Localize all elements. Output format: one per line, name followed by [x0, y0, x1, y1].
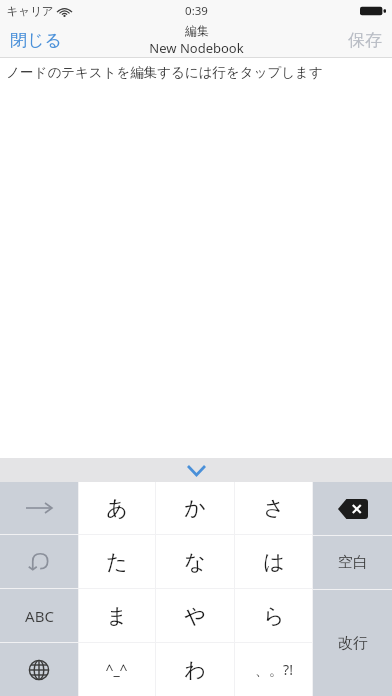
- staticText: 0:39: [185, 3, 208, 19]
- staticText: ABC: [25, 606, 54, 626]
- button[interactable]: ま: [78, 589, 155, 642]
- button[interactable]: や: [156, 589, 234, 642]
- staticText: 、。?!: [255, 660, 293, 679]
- staticText: わ: [184, 657, 206, 683]
- button[interactable]: Delete: [313, 482, 392, 535]
- button[interactable]: ら: [235, 589, 313, 642]
- button[interactable]: 空白: [313, 536, 392, 589]
- staticText: キャリア: [6, 4, 54, 18]
- button[interactable]: 、。?!: [235, 643, 313, 696]
- staticText: 閉じる: [10, 30, 62, 51]
- staticText: New Nodebook: [149, 39, 244, 57]
- button[interactable]: Hide keyboard: [172, 458, 220, 482]
- button[interactable]: 改行: [313, 590, 392, 696]
- staticText: な: [184, 549, 206, 575]
- staticText: さ: [263, 495, 285, 521]
- button[interactable]: か: [156, 482, 234, 534]
- button[interactable]: Switch keyboard: [0, 643, 78, 696]
- staticText: か: [184, 495, 206, 521]
- staticText: た: [106, 549, 128, 575]
- staticText: 改行: [338, 634, 368, 653]
- button[interactable]: は: [235, 535, 313, 588]
- button[interactable]: Undo: [0, 535, 78, 588]
- staticText: ノードのテキストを編集するには行をタップします: [6, 64, 323, 81]
- staticText: 空白: [338, 553, 368, 572]
- button[interactable]: さ: [235, 482, 313, 534]
- button[interactable]: 閉じる: [0, 22, 72, 58]
- staticText: 編集: [185, 23, 209, 38]
- staticText: ^_^: [105, 660, 128, 679]
- staticText: ら: [263, 603, 285, 629]
- staticText: や: [184, 603, 206, 629]
- button[interactable]: 保存: [338, 22, 392, 58]
- staticText: は: [263, 549, 285, 575]
- staticText: あ: [106, 495, 128, 521]
- staticText: ま: [106, 603, 128, 629]
- staticText: 保存: [348, 30, 382, 51]
- button[interactable]: Next candidate: [0, 482, 78, 534]
- button[interactable]: ABC: [0, 589, 78, 642]
- button[interactable]: な: [156, 535, 234, 588]
- button[interactable]: ^_^: [78, 643, 155, 696]
- button[interactable]: わ: [156, 643, 234, 696]
- button[interactable]: あ: [78, 482, 155, 534]
- button[interactable]: た: [78, 535, 155, 588]
